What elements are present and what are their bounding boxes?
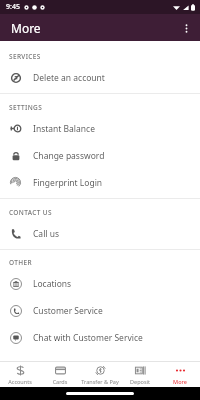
staticText: More — [11, 20, 41, 36]
button[interactable]: Change password — [0, 142, 200, 169]
staticText: Chat with Customer Service — [33, 332, 143, 344]
staticText: Change password — [33, 150, 105, 162]
button[interactable]: Call us — [0, 220, 200, 247]
button[interactable]: Instant Balance — [0, 115, 200, 142]
staticText: Transfer & Pay — [80, 378, 120, 385]
staticText: Instant Balance — [33, 123, 95, 135]
staticText: 9:45 — [6, 2, 20, 12]
staticText: OTHER — [9, 258, 32, 267]
staticText: Customer Service — [33, 305, 103, 317]
staticText: More — [160, 378, 200, 385]
staticText: Cards — [40, 378, 80, 385]
staticText: SETTINGS — [9, 103, 43, 112]
staticText: SERVICES — [9, 52, 41, 61]
button[interactable]: Locations — [0, 270, 200, 297]
button[interactable]: Customer Service — [0, 297, 200, 324]
button[interactable]: Delete an account — [0, 64, 200, 91]
button[interactable]: Transfer & Pay — [80, 362, 120, 387]
staticText: Accounts — [0, 378, 40, 385]
button[interactable]: More — [160, 362, 200, 387]
button[interactable]: Fingerprint Login — [0, 169, 200, 196]
button[interactable]: More options — [175, 17, 197, 39]
button[interactable]: Cards — [40, 362, 80, 387]
staticText: Delete an account — [33, 72, 105, 84]
button[interactable]: Deposit — [120, 362, 160, 387]
button[interactable]: Accounts — [0, 362, 40, 387]
staticText: Locations — [33, 278, 72, 290]
staticText: Call us — [33, 228, 60, 240]
button[interactable]: Chat with Customer Service — [0, 324, 200, 351]
staticText: Deposit — [120, 378, 160, 385]
staticText: Fingerprint Login — [33, 177, 103, 189]
staticText: CONTACT US — [9, 208, 52, 217]
